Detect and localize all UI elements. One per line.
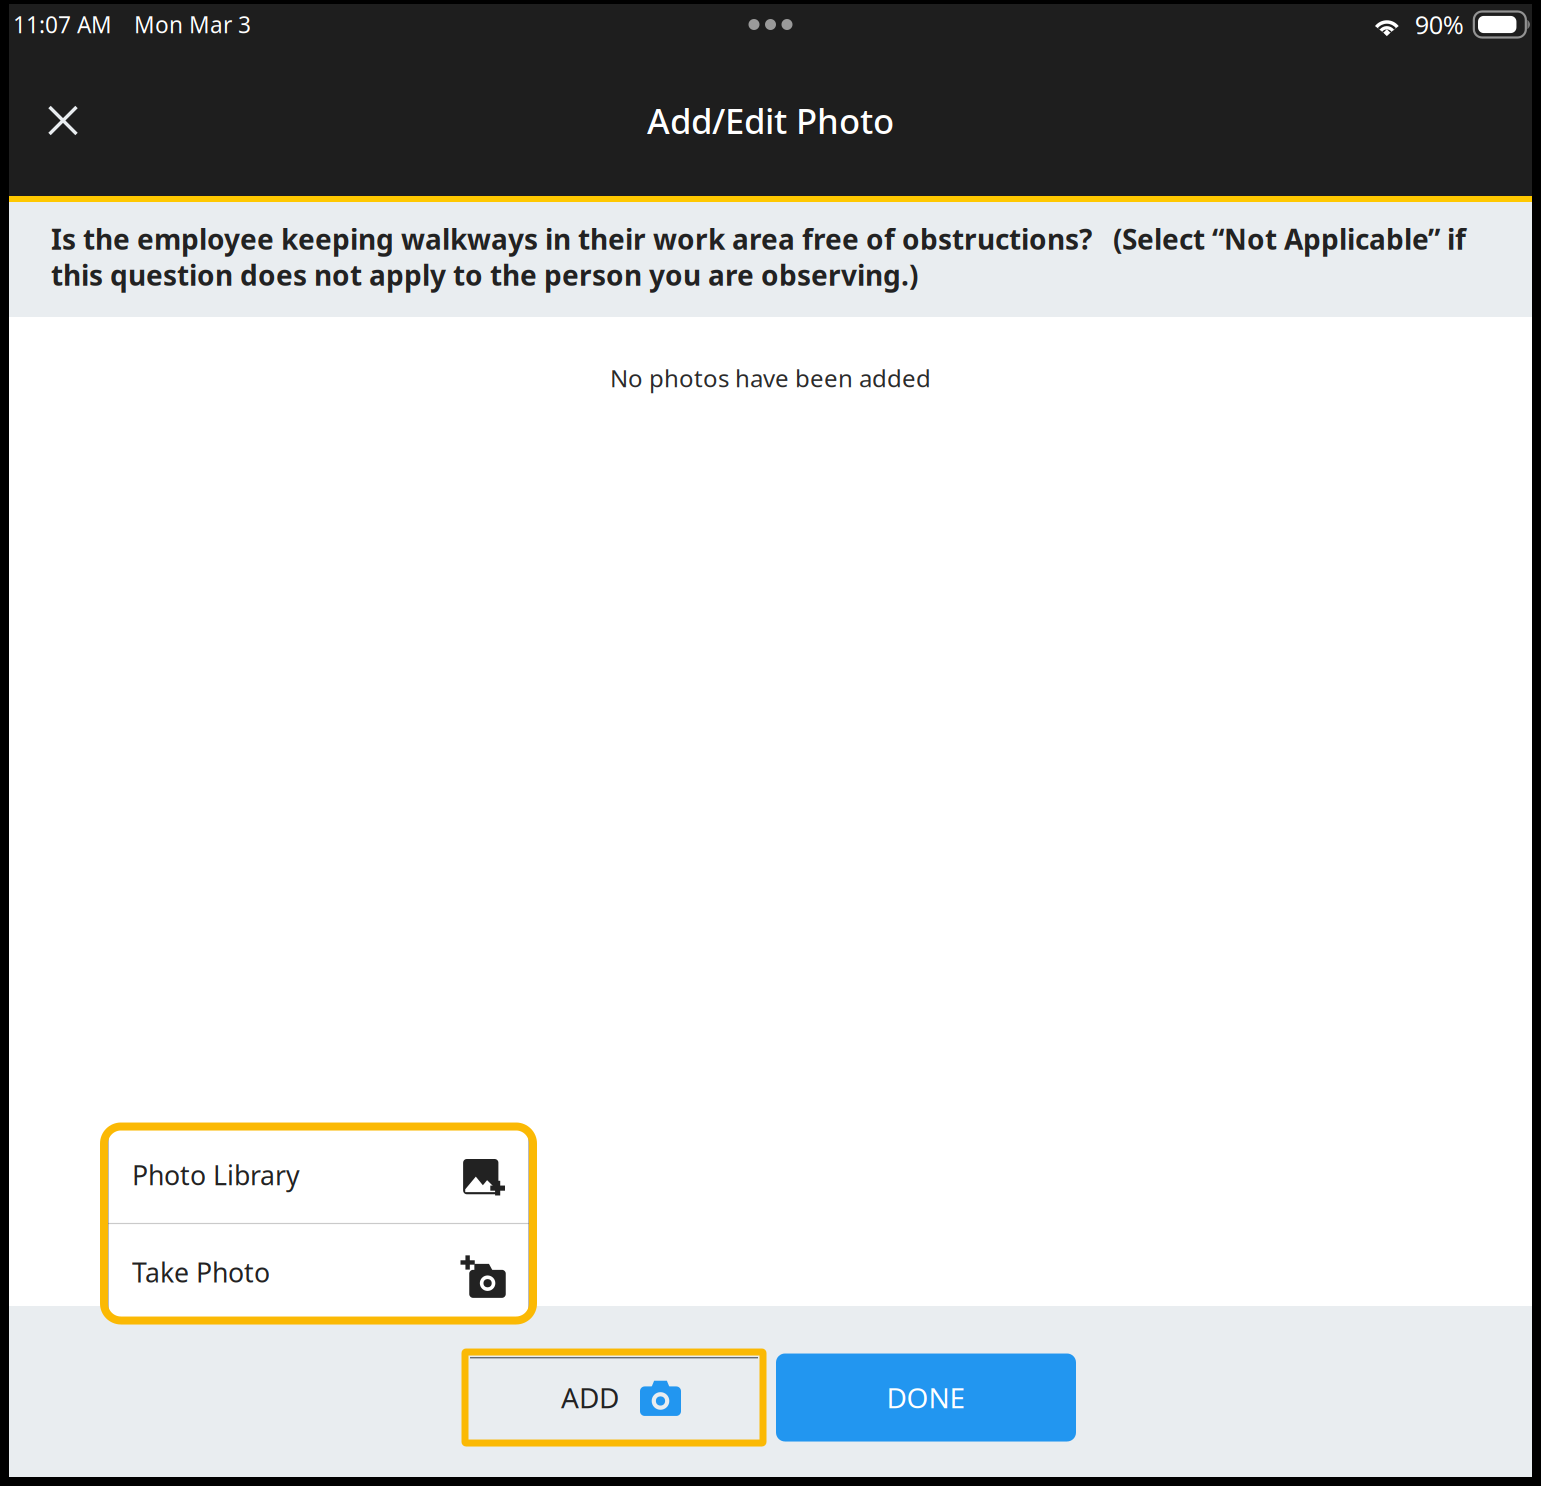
button[interactable]: Close [31,88,95,152]
staticText: Take Photo [132,1254,270,1290]
staticText: Add/Edit Photo [647,97,894,143]
staticText: Is the employee keeping walkways in thei… [51,220,1466,258]
staticText: ADD [561,1379,619,1416]
staticText: DONE [886,1379,965,1416]
staticText: Mon Mar 3 [134,9,251,39]
staticText: this question does not apply to the pers… [51,256,918,294]
button[interactable]: Take Photo [108,1224,529,1320]
button[interactable]: DONE [776,1353,1076,1441]
button[interactable]: Photo Library [108,1127,529,1223]
staticText: No photos have been added [610,362,931,394]
button[interactable]: ADD [465,1352,763,1443]
staticText: 90% [1415,8,1464,41]
staticText: Photo Library [132,1157,300,1193]
staticText: 11:07 AM [13,9,112,39]
